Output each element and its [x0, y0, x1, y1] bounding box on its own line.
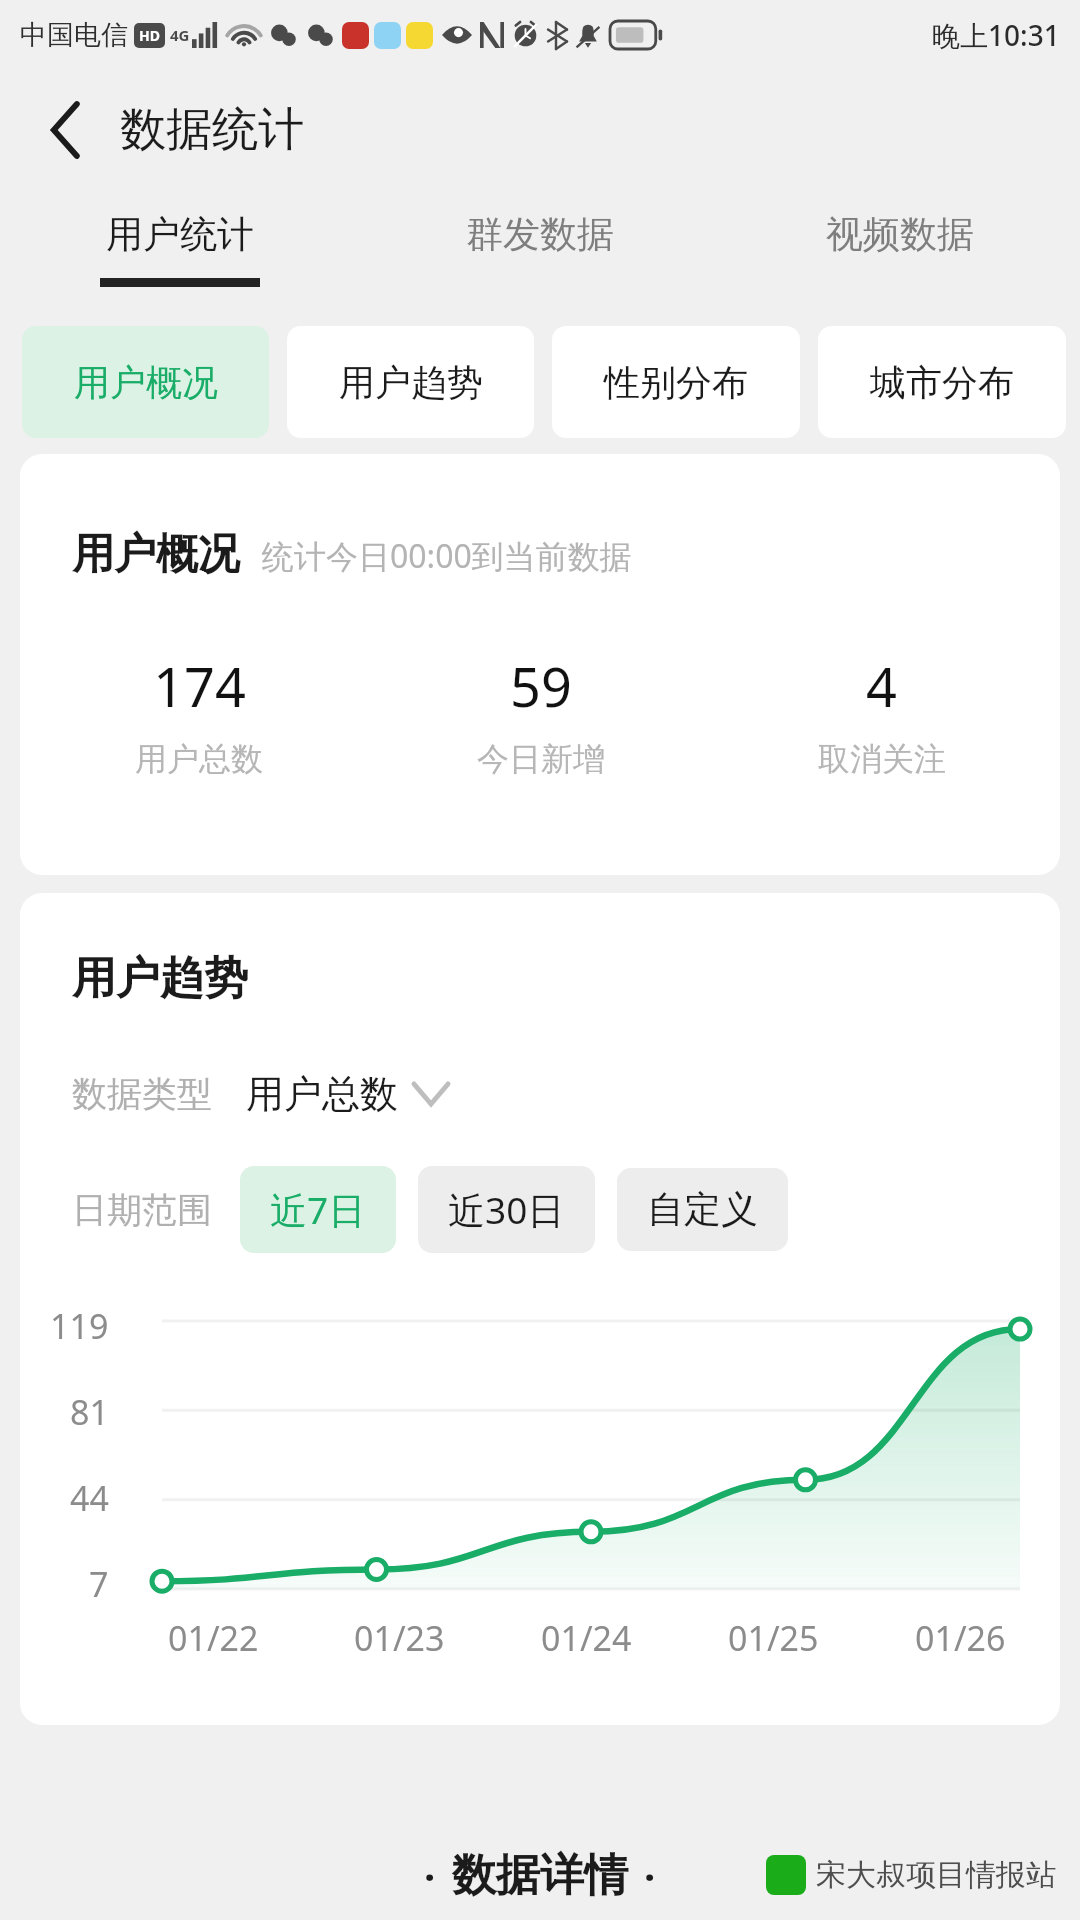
button[interactable]: 群发数据	[360, 190, 720, 308]
staticText: 01/25	[728, 1615, 819, 1661]
staticText: 174	[153, 649, 246, 723]
staticText: 日期范围	[72, 1188, 212, 1232]
staticText: 用户统计	[106, 211, 254, 258]
button[interactable]: 用户趋势	[287, 326, 534, 438]
staticText: 取消关注	[818, 739, 946, 779]
staticText: ·	[424, 1849, 436, 1903]
button[interactable]: 用户总数	[246, 1064, 448, 1124]
staticText: 性别分布	[604, 360, 748, 405]
staticText: ·	[644, 1849, 656, 1903]
staticText: 119	[50, 1303, 109, 1349]
staticText: 统计今日00:00到当前数据	[262, 534, 632, 578]
staticText: 用户趋势	[339, 360, 483, 405]
staticText: 用户概况	[74, 360, 218, 405]
staticText: 今日新增	[477, 739, 605, 779]
staticText: 01/24	[541, 1615, 632, 1661]
staticText: 数据类型	[72, 1072, 212, 1116]
staticText: 01/23	[354, 1615, 445, 1661]
button[interactable]: 用户统计	[0, 190, 360, 308]
staticText: 用户概况	[72, 528, 240, 581]
staticText: 群发数据	[466, 211, 614, 258]
button[interactable]: 近30日	[418, 1166, 595, 1253]
button[interactable]: Back	[30, 94, 102, 166]
staticText: 数据详情	[452, 1848, 628, 1903]
staticText: 用户总数	[246, 1070, 398, 1118]
staticText: 中国电信	[20, 18, 128, 52]
button[interactable]: 用户概况	[22, 326, 269, 438]
staticText: 44	[70, 1475, 109, 1521]
staticText: 近30日	[448, 1184, 565, 1235]
staticText: 用户趋势	[72, 951, 248, 1006]
button[interactable]: 自定义	[617, 1168, 788, 1251]
button[interactable]: 城市分布	[818, 326, 1066, 438]
staticText: 用户总数	[135, 739, 263, 779]
staticText: 宋大叔项目情报站	[816, 1856, 1056, 1894]
staticText: 59	[510, 649, 572, 723]
button[interactable]: 近7日	[240, 1166, 396, 1253]
staticText: 视频数据	[826, 211, 974, 258]
staticText: 数据统计	[120, 101, 304, 159]
staticText: 晚上10:31	[932, 16, 1060, 54]
staticText: 81	[70, 1389, 109, 1435]
button[interactable]: 性别分布	[552, 326, 800, 438]
staticText: 自定义	[647, 1186, 758, 1233]
staticText: 4	[866, 649, 897, 723]
staticText: 01/22	[168, 1615, 259, 1661]
staticText: 城市分布	[870, 360, 1014, 405]
staticText: 7	[89, 1561, 109, 1607]
button[interactable]: 视频数据	[720, 190, 1080, 308]
staticText: HD	[139, 26, 160, 45]
staticText: 4G	[170, 25, 190, 45]
staticText: 01/26	[915, 1615, 1006, 1661]
staticText: 近7日	[270, 1184, 366, 1235]
